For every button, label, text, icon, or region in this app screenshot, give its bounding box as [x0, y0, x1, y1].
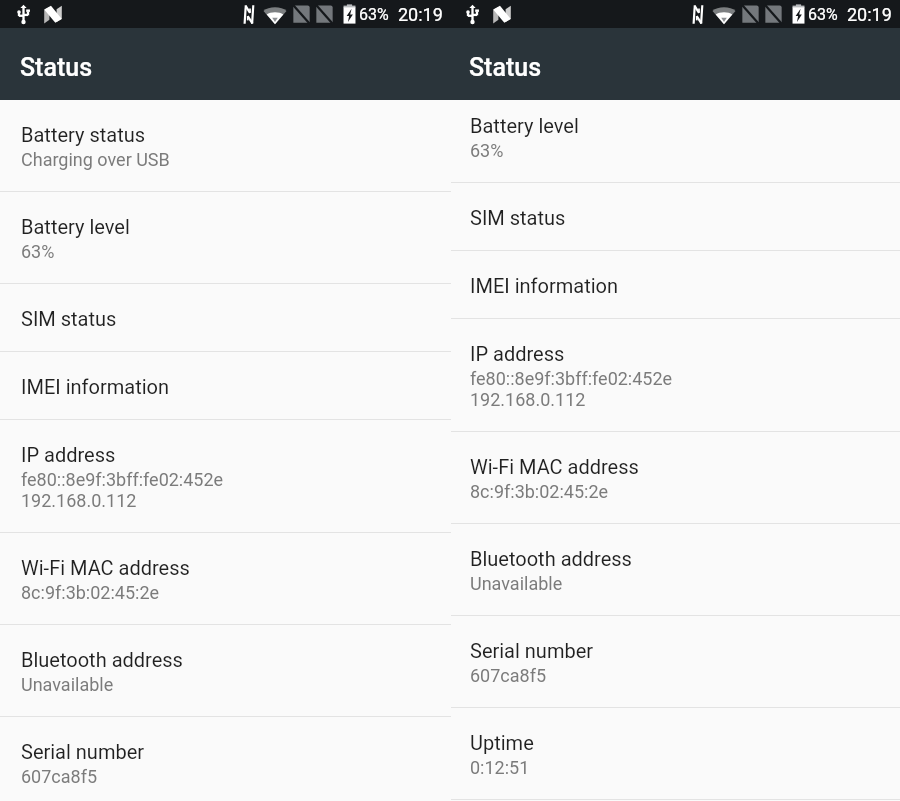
staticText: 8c:9f:3b:02:45:2e: [470, 481, 609, 502]
staticText: Battery level: [470, 114, 579, 137]
staticText: 63%: [359, 5, 389, 24]
staticText: IP address: [470, 342, 565, 365]
button[interactable]: Serial number: [451, 616, 900, 707]
staticText: 607ca8f5: [21, 766, 98, 787]
other: Android version: [492, 5, 512, 24]
other: Battery charging 63 percent: [792, 4, 805, 24]
staticText: Status: [469, 53, 542, 82]
staticText: Uptime: [470, 731, 534, 754]
button[interactable]: Uptime: [451, 708, 900, 799]
button[interactable]: Battery status: [0, 100, 451, 191]
staticText: Charging over USB: [21, 149, 170, 170]
other: NFC enabled: [241, 4, 256, 25]
button[interactable]: Wi-Fi MAC address: [0, 533, 451, 624]
staticText: 63%: [808, 5, 838, 24]
staticText: fe80::8e9f:3bff:fe02:452e 192.168.0.112: [21, 469, 224, 511]
staticText: Battery level: [21, 215, 130, 238]
staticText: Battery status: [21, 123, 146, 146]
button[interactable]: IP address: [451, 319, 900, 431]
other: No SIM card: [293, 4, 310, 24]
staticText: Wi-Fi MAC address: [21, 556, 190, 579]
staticText: Wi-Fi MAC address: [470, 455, 639, 478]
staticText: 63%: [21, 241, 55, 262]
staticText: IMEI information: [470, 274, 618, 297]
button[interactable]: Status: [0, 28, 451, 100]
staticText: Unavailable: [21, 674, 114, 695]
button[interactable]: IMEI information: [451, 251, 900, 318]
other: Battery charging 63 percent: [343, 4, 356, 24]
staticText: Unavailable: [470, 573, 563, 594]
staticText: Serial number: [470, 639, 594, 662]
staticText: fe80::8e9f:3bff:fe02:452e 192.168.0.112: [470, 368, 673, 410]
other: Wi-Fi signal: [712, 4, 736, 25]
staticText: 607ca8f5: [470, 665, 547, 686]
button[interactable]: Battery level: [0, 192, 451, 283]
other: No SIM card: [765, 4, 782, 24]
button[interactable]: Battery level: [451, 100, 900, 182]
button[interactable]: IP address: [0, 420, 451, 532]
other: No SIM card: [742, 4, 759, 24]
staticText: IP address: [21, 443, 116, 466]
staticText: Bluetooth address: [470, 547, 632, 570]
button[interactable]: Bluetooth address: [451, 524, 900, 615]
button[interactable]: SIM status: [0, 284, 451, 351]
staticText: Serial number: [21, 740, 145, 763]
button[interactable]: SIM status: [451, 183, 900, 250]
button[interactable]: IMEI information: [0, 352, 451, 419]
staticText: Bluetooth address: [21, 648, 183, 671]
other: Android version: [43, 5, 63, 24]
staticText: 8c:9f:3b:02:45:2e: [21, 582, 160, 603]
staticText: SIM status: [470, 206, 566, 229]
staticText: 63%: [470, 140, 504, 161]
staticText: 20:19: [398, 4, 443, 25]
button[interactable]: Bluetooth address: [0, 625, 451, 716]
other: USB connected: [465, 4, 480, 25]
button[interactable]: Wi-Fi MAC address: [451, 432, 900, 523]
other: USB connected: [16, 4, 31, 25]
other: NFC enabled: [690, 4, 705, 25]
staticText: SIM status: [21, 307, 117, 330]
staticText: Status: [20, 53, 93, 82]
other: No SIM card: [316, 4, 333, 24]
button[interactable]: Serial number: [0, 717, 451, 801]
button[interactable]: Status: [451, 28, 900, 100]
staticText: 20:19: [847, 4, 892, 25]
staticText: IMEI information: [21, 375, 169, 398]
staticText: 0:12:51: [470, 757, 530, 778]
other: Wi-Fi signal: [263, 4, 287, 25]
